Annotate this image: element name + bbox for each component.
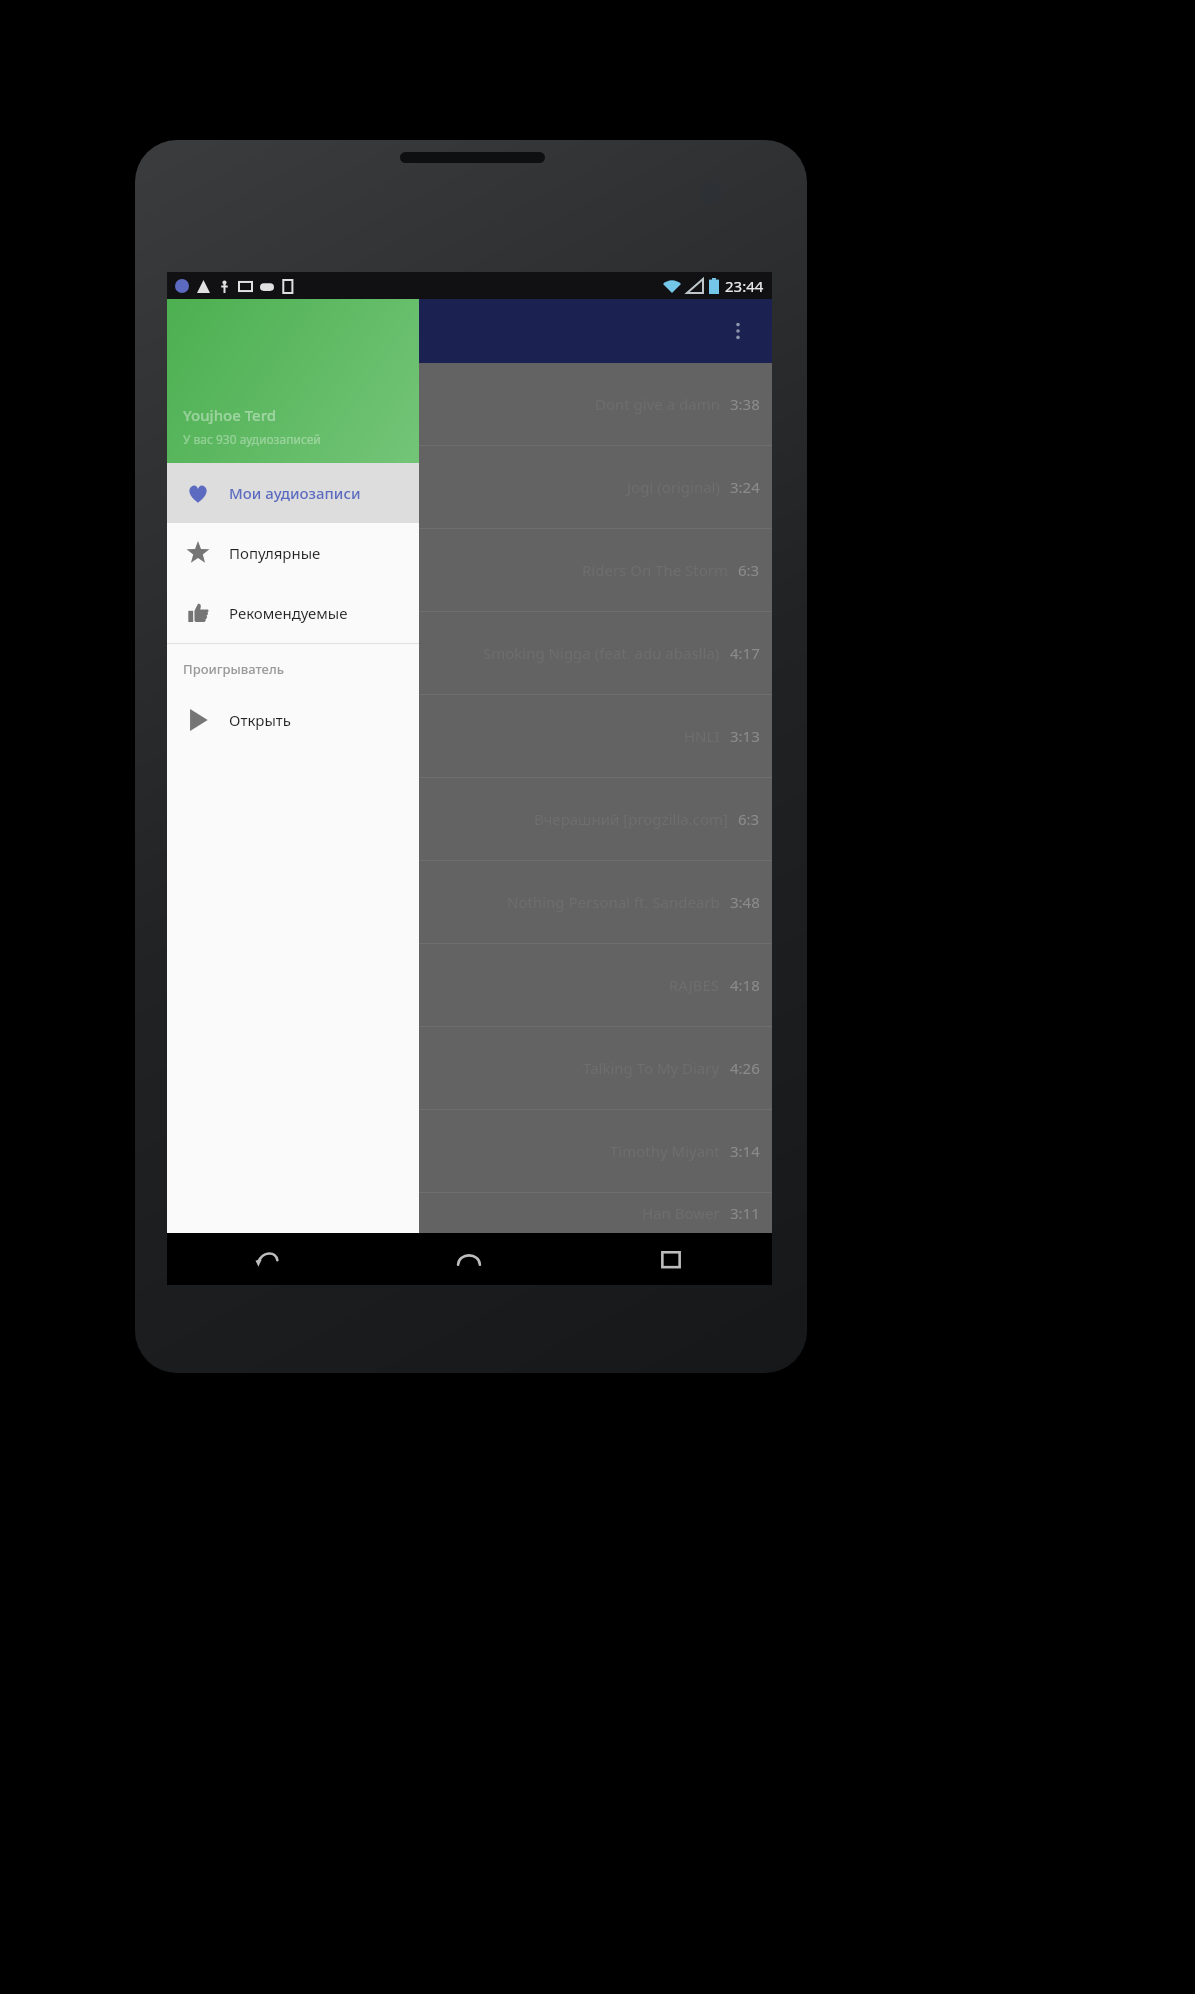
staticText: Smoking Nigga (feat. adu abaslla) (483, 643, 720, 663)
staticText: 6:3 (738, 560, 760, 580)
button[interactable]: Home (368, 1233, 570, 1285)
staticText: 4:17 (730, 643, 760, 663)
button[interactable]: Открыть (167, 690, 419, 750)
staticText: Youjhoe Terd (183, 405, 277, 425)
staticText: У вас 930 аудиозаписей (183, 431, 321, 447)
button[interactable]: Популярные (167, 523, 419, 583)
staticText: 3:11 (730, 1203, 760, 1223)
staticText: Dont give a damn (595, 394, 720, 414)
button[interactable]: Smoking Nigga (feat. adu abaslla) (167, 612, 772, 695)
staticText: Мои аудиозаписи (229, 483, 361, 503)
staticText: 4:26 (730, 1058, 760, 1078)
staticText: 3:48 (730, 892, 760, 912)
staticText: Timothy Miyant (610, 1141, 720, 1161)
button[interactable]: RAJBES (167, 944, 772, 1027)
button[interactable]: More options (714, 307, 762, 355)
staticText: Nothing Personal ft. Sandearb (507, 892, 720, 912)
button[interactable]: Рекомендуемые (167, 583, 419, 643)
staticText: Jogi (original) (627, 477, 720, 497)
button[interactable]: Riders On The Storm (167, 529, 772, 612)
staticText: Популярные (229, 543, 321, 563)
button[interactable]: Dont give a damn (167, 363, 772, 446)
staticText: Talking To My Diary (583, 1058, 720, 1078)
staticText: HNLI (684, 726, 720, 746)
staticText: 3:14 (730, 1141, 760, 1161)
staticText: Рекомендуемые (229, 603, 348, 623)
button[interactable]: HNLI (167, 695, 772, 778)
staticText: Вчерашний [progzilla.com] (534, 809, 728, 829)
button[interactable]: Talking To My Diary (167, 1027, 772, 1110)
staticText: Проигрыватель (183, 660, 284, 678)
button[interactable]: Вчерашний [progzilla.com] (167, 778, 772, 861)
button[interactable]: Timothy Miyant (167, 1110, 772, 1193)
button[interactable]: Recents (570, 1233, 772, 1285)
button[interactable]: Back (167, 1233, 368, 1285)
staticText: RAJBES (669, 975, 720, 995)
staticText: 23:44 (725, 276, 764, 296)
button[interactable]: Мои аудиозаписи (167, 463, 419, 523)
button[interactable]: Han Bower (167, 1193, 772, 1233)
staticText: 6:3 (738, 809, 760, 829)
staticText: 3:13 (730, 726, 760, 746)
button[interactable]: Jogi (original) (167, 446, 772, 529)
staticText: 4:18 (730, 975, 760, 995)
button[interactable]: Nothing Personal ft. Sandearb (167, 861, 772, 944)
staticText: 3:38 (730, 394, 760, 414)
staticText: 3:24 (730, 477, 760, 497)
staticText: Han Bower (642, 1203, 720, 1223)
staticText: Открыть (229, 710, 292, 730)
